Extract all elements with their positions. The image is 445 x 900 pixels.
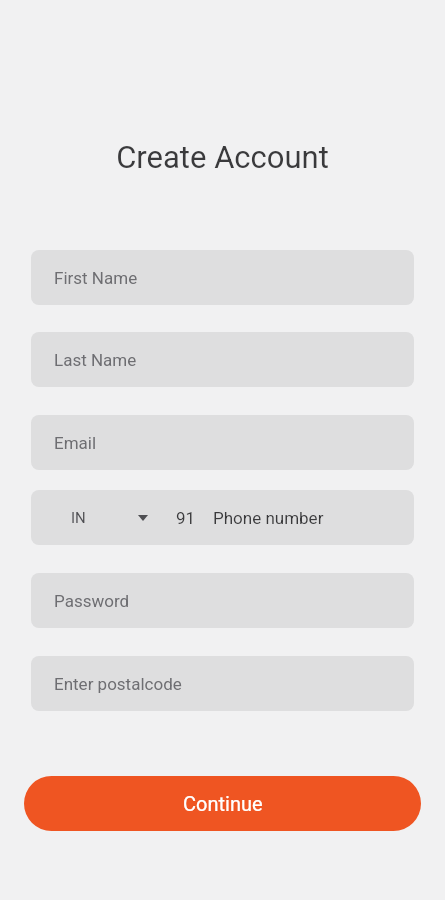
staticText: Continue [183,792,263,815]
staticText: Last Name [54,350,137,370]
button[interactable]: Last Name [31,332,414,387]
staticText: IN [71,509,86,527]
button[interactable]: Email [31,415,414,470]
button[interactable]: Select country code [31,490,162,545]
button[interactable]: Continue [24,776,421,831]
button[interactable]: First Name [31,250,414,305]
button[interactable]: Phone number [31,490,414,545]
button[interactable]: Enter postalcode [31,656,414,711]
staticText: Enter postalcode [54,674,182,694]
staticText: First Name [54,268,138,288]
staticText: 91 [176,508,196,528]
staticText: Password [54,591,130,611]
button[interactable]: Password [31,573,414,628]
staticText: Phone number [213,508,324,528]
staticText: Email [54,433,97,453]
staticText: Create Account [0,139,445,175]
